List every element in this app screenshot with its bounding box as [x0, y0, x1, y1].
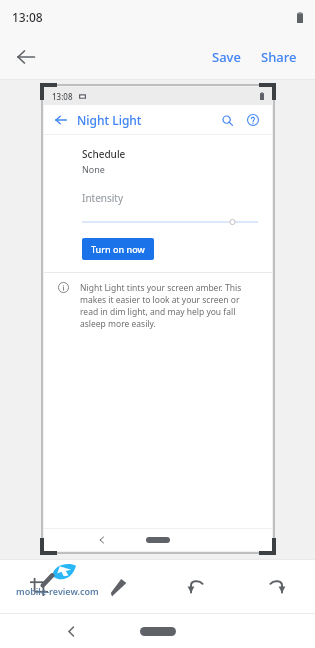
- button[interactable]: Crop: [0, 559, 78, 614]
- button[interactable]: Navigate up: [50, 109, 72, 131]
- staticText: Night Light: [77, 112, 142, 128]
- staticText: Schedule: [82, 147, 126, 161]
- button[interactable]: Save: [204, 42, 249, 72]
- staticText: Share: [261, 48, 297, 66]
- button[interactable]: Turn on now: [82, 238, 154, 260]
- button[interactable]: Help: [242, 109, 264, 131]
- staticText: mobile-review.com: [16, 585, 99, 597]
- staticText: Save: [212, 48, 241, 66]
- staticText: None: [82, 163, 105, 175]
- button[interactable]: Back: [6, 37, 46, 77]
- staticText: 13:08: [12, 9, 43, 25]
- staticText: Turn on now: [91, 243, 145, 255]
- button[interactable]: Share: [253, 42, 305, 72]
- button[interactable]: Intensity slider: [44, 215, 272, 229]
- button[interactable]: Schedule: [44, 145, 272, 177]
- staticText: Night Light tints your screen amber. Thi…: [80, 282, 258, 330]
- button[interactable]: Home: [140, 627, 176, 636]
- button[interactable]: Search: [216, 109, 238, 131]
- button[interactable]: Redo: [236, 559, 315, 614]
- button[interactable]: Draw: [78, 559, 157, 614]
- staticText: 13:08: [52, 91, 73, 102]
- staticText: Intensity: [82, 191, 124, 205]
- button[interactable]: Undo: [157, 559, 236, 614]
- button[interactable]: Home: [146, 537, 170, 543]
- button[interactable]: Back: [58, 618, 84, 644]
- button[interactable]: Back: [94, 532, 110, 548]
